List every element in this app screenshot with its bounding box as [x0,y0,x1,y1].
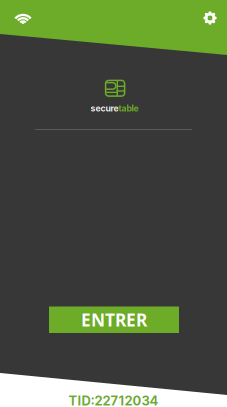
button[interactable]: Settings [196,5,224,31]
button[interactable]: Wi-Fi [8,5,38,31]
staticText: secure [90,103,118,113]
staticText: 22712034 [94,393,158,407]
staticText: ENTRER [81,308,147,331]
staticText: table [118,103,138,113]
staticText: TID: [68,393,94,407]
button[interactable]: ENTRER [49,306,179,333]
